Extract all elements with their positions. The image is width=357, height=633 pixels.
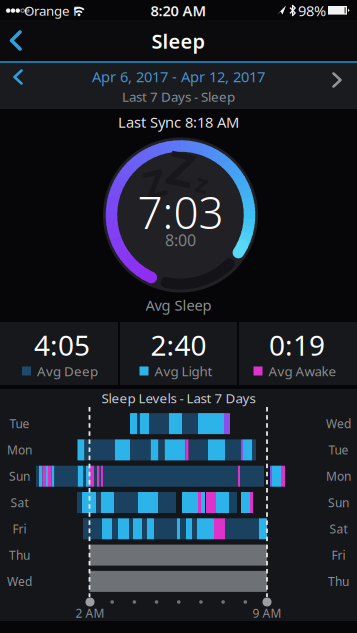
staticText: Mon [326, 468, 351, 484]
staticText: z [196, 166, 208, 200]
staticText: 0:19 [269, 326, 325, 364]
staticText: Sleep Levels - Last 7 Days [101, 389, 255, 407]
staticText: Sleep [151, 28, 205, 54]
staticText: Mon [7, 442, 32, 458]
staticText: Z [167, 137, 194, 199]
staticText: Thu [9, 547, 30, 563]
staticText: Avg Light [154, 362, 212, 380]
button[interactable] [0, 20, 44, 61]
staticText: 8:00 [165, 229, 196, 251]
staticText: Wed [326, 416, 351, 431]
staticText: Avg Sleep [145, 295, 211, 315]
staticText: Z [144, 158, 166, 208]
button[interactable] [319, 63, 355, 109]
staticText: Last Sync 8:18 AM [118, 112, 239, 132]
staticText: 7:03 [137, 183, 223, 241]
button[interactable]: Apr 6, 2017 - Apr 12, 2017 [92, 67, 265, 86]
staticText: 2 AM [75, 605, 104, 621]
staticText: Apr 6, 2017 - Apr 12, 2017 [92, 67, 265, 86]
staticText: Thu [328, 573, 349, 589]
staticText: 98% [298, 1, 326, 20]
staticText: 4:05 [34, 326, 90, 364]
staticText: Fri [12, 521, 26, 537]
staticText: 2:40 [150, 326, 206, 364]
staticText: Orange F [24, 2, 80, 19]
staticText: Sat [329, 521, 347, 537]
button[interactable] [2, 63, 38, 109]
staticText: Tue [328, 442, 348, 458]
staticText: Avg Awake [268, 362, 336, 380]
staticText: 8:20 AM [150, 1, 206, 20]
staticText: 9 AM [252, 605, 281, 621]
staticText: Last 7 Days - Sleep [122, 88, 235, 105]
staticText: Sun [328, 494, 349, 510]
staticText: Sun [9, 468, 30, 484]
staticText: Tue [9, 416, 29, 431]
staticText: Avg Deep [37, 362, 98, 380]
staticText: Sat [10, 494, 28, 510]
staticText: Wed [7, 573, 32, 589]
staticText: Fri [331, 547, 345, 563]
